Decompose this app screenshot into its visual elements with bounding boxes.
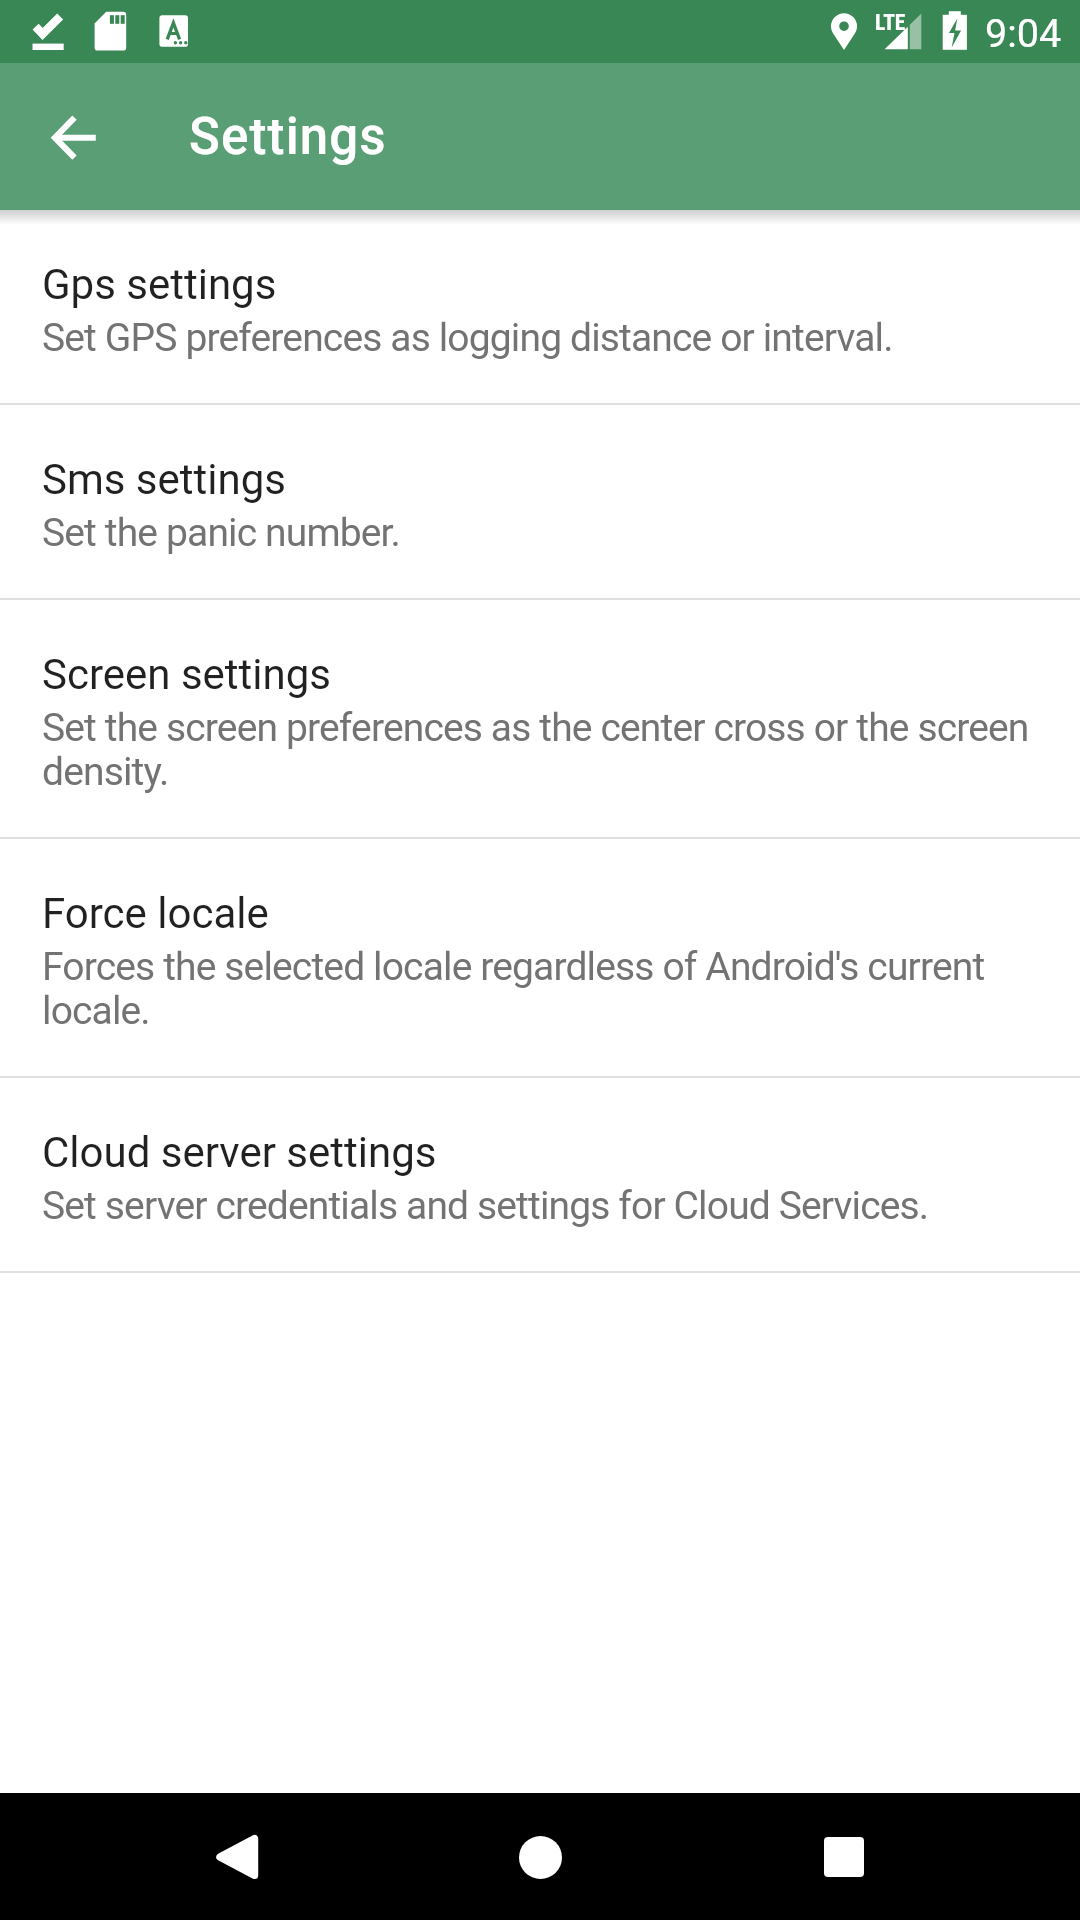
button[interactable]: Recent apps <box>789 1802 899 1912</box>
staticText: Screen settings <box>42 651 332 699</box>
staticText: Set the screen preferences as the center… <box>42 706 1042 794</box>
staticText: LTE <box>875 10 906 35</box>
button[interactable]: Sms settings <box>0 405 1080 598</box>
button[interactable]: Home <box>485 1802 595 1912</box>
staticText: Sms settings <box>42 456 286 504</box>
staticText: Set the panic number. <box>42 511 401 555</box>
staticText: Cloud server settings <box>42 1129 437 1177</box>
button[interactable]: Back <box>182 1802 292 1912</box>
staticText: 9:04 <box>985 10 1062 56</box>
button[interactable]: Force locale <box>0 839 1080 1076</box>
staticText: Set server credentials and settings for … <box>42 1184 929 1228</box>
button[interactable]: Gps settings <box>0 210 1080 403</box>
staticText: Set GPS preferences as logging distance … <box>42 316 893 360</box>
button[interactable]: Navigate up <box>26 89 122 185</box>
staticText: Gps settings <box>42 261 277 309</box>
button[interactable]: Screen settings <box>0 600 1080 837</box>
staticText: Forces the selected locale regardless of… <box>42 945 1042 1033</box>
button[interactable]: Cloud server settings <box>0 1078 1080 1271</box>
staticText: Settings <box>189 107 387 167</box>
staticText: Force locale <box>42 890 269 938</box>
